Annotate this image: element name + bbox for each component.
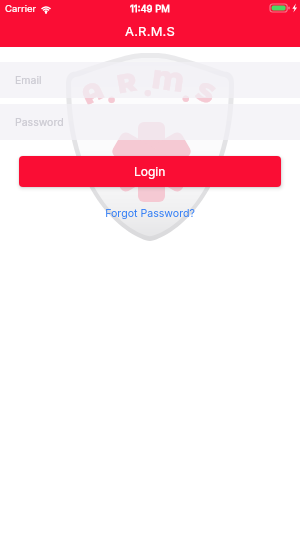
staticText: . — [180, 78, 196, 108]
button[interactable]: Login — [19, 156, 281, 187]
staticText: . — [144, 73, 152, 102]
staticText: Forgot Password? — [105, 207, 195, 220]
button[interactable]: Password — [0, 104, 300, 140]
staticText: M — [150, 63, 186, 99]
staticText: 11:49 PM — [130, 3, 170, 14]
staticText: A.R.M.S — [125, 23, 176, 39]
staticText: Login — [134, 164, 166, 179]
button[interactable]: Email — [0, 62, 300, 98]
staticText: Carrier — [5, 3, 37, 14]
staticText: A — [76, 74, 109, 112]
staticText: R — [114, 65, 140, 100]
staticText: Email — [15, 74, 42, 87]
staticText: Password — [15, 116, 64, 129]
staticText: . — [102, 79, 118, 109]
button[interactable]: Forgot Password? — [99, 206, 201, 221]
staticText: S — [191, 75, 221, 111]
